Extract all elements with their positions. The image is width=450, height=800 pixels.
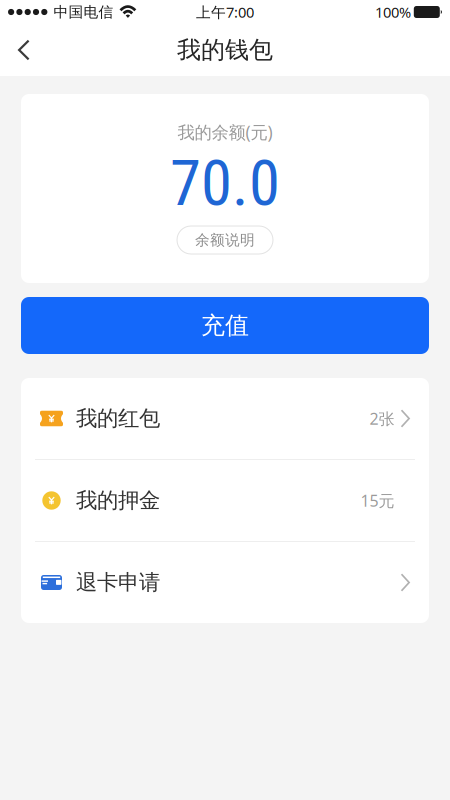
button[interactable]: 充值 [21, 297, 429, 354]
button[interactable]: 我的红包 [21, 378, 429, 459]
staticText: 充值 [201, 311, 249, 340]
button[interactable]: 余额说明 [177, 226, 273, 254]
staticText: 我的余额(元) [177, 120, 272, 143]
staticText: 2张 [370, 408, 395, 429]
staticText: 我的红包 [76, 405, 160, 432]
staticText: 我的钱包 [177, 35, 273, 65]
staticText: 我的押金 [76, 487, 160, 514]
button[interactable]: Back [0, 24, 48, 76]
staticText: 70.0 [170, 147, 280, 220]
staticText: 退卡申请 [76, 569, 160, 596]
staticText: 中国电信 [53, 3, 113, 21]
button[interactable]: 退卡申请 [21, 542, 429, 623]
staticText: 15元 [361, 490, 395, 511]
staticText: 100% [375, 2, 411, 22]
staticText: 余额说明 [195, 231, 255, 249]
staticText: 上午7:00 [196, 2, 254, 22]
button[interactable]: 我的押金 [21, 460, 429, 541]
